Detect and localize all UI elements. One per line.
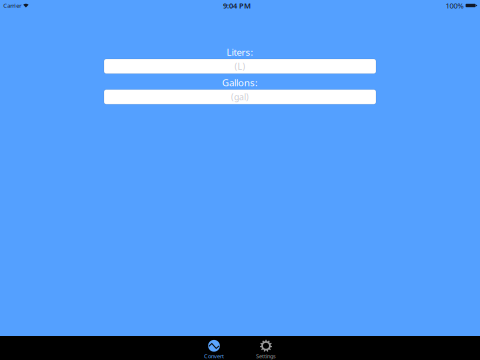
- staticText: Liters:: [226, 45, 253, 59]
- staticText: (gal): [231, 91, 249, 103]
- staticText: (L): [234, 60, 245, 72]
- staticText: Convert: [204, 352, 224, 360]
- staticText: 100%: [445, 0, 463, 11]
- staticText: 9:04 PM: [223, 0, 251, 11]
- button[interactable]: Gallons: (gal): [104, 90, 376, 104]
- staticText: Carrier: [3, 1, 21, 9]
- button[interactable]: Convert: [190, 336, 238, 360]
- staticText: Settings: [256, 352, 276, 360]
- staticText: Gallons:: [222, 76, 258, 89]
- button[interactable]: Settings: [242, 336, 290, 360]
- button[interactable]: Liters: (L): [104, 59, 376, 74]
